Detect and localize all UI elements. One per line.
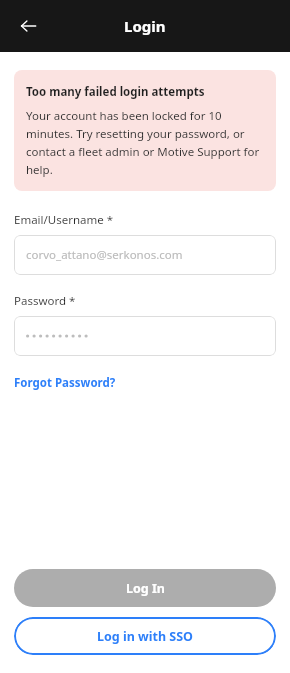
- button[interactable]: Log in with SSO: [14, 617, 276, 655]
- button[interactable]: Back: [10, 8, 46, 44]
- staticText: Forgot Password?: [14, 375, 116, 391]
- staticText: corvo_attano@serkonos.com: [26, 247, 183, 263]
- button[interactable]: corvo_attano@serkonos.com: [14, 235, 276, 275]
- staticText: Login: [124, 16, 166, 36]
- staticText: Log In: [126, 580, 165, 597]
- staticText: Email/Username *: [14, 212, 114, 228]
- staticText: Password *: [14, 293, 76, 309]
- staticText: Too many failed login attempts: [26, 84, 205, 100]
- staticText: Log in with SSO: [97, 628, 193, 645]
- button[interactable]: Forgot Password?: [14, 373, 116, 393]
- staticText: Your account has been locked for 10 minu…: [26, 108, 264, 177]
- button[interactable]: Log In: [14, 569, 276, 607]
- button[interactable]: [14, 316, 276, 356]
